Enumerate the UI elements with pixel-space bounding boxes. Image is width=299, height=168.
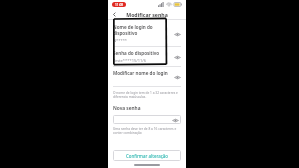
staticText: Confirmar alteração xyxy=(126,153,169,159)
staticText: N***** xyxy=(113,38,128,43)
button[interactable]: Voltar xyxy=(110,10,119,19)
button[interactable]: Mostrar senha do dispositivo xyxy=(173,53,181,61)
staticText: Modificar nome do login xyxy=(113,70,168,76)
staticText: Senha do dispositivo xyxy=(113,50,160,56)
staticText: Modificar senha xyxy=(126,11,168,18)
staticText: Uma senha deve ter de 8 a 16 caracteres … xyxy=(113,127,181,135)
button[interactable]: Senha do dispositivo xyxy=(113,50,181,70)
staticText: 11:08 xyxy=(115,3,124,7)
button[interactable]: Mostrar nova senha xyxy=(171,116,179,124)
button[interactable]: Mostrar nova senha xyxy=(113,115,181,124)
staticText: Teste****15/11/6 xyxy=(113,58,147,63)
button[interactable]: Nome de login do dispositivo xyxy=(113,24,181,50)
staticText: Nome de login do dispositivo xyxy=(113,24,173,36)
button[interactable]: Mostrar nome de login xyxy=(173,30,181,38)
staticText: Nova senha xyxy=(113,105,141,112)
staticText: O nome de login tem de 1 a 32 caracteres… xyxy=(113,91,181,99)
button[interactable]: Mostrar novo nome de login xyxy=(173,73,181,81)
button[interactable]: Confirmar alteração xyxy=(113,150,181,161)
button[interactable]: Modificar nome do login xyxy=(113,70,181,90)
